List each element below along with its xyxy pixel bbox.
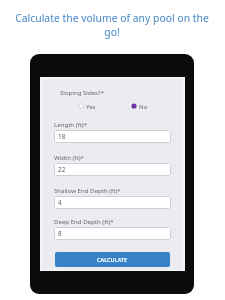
button[interactable]: 22	[54, 163, 171, 176]
staticText: Width (ft)*	[54, 153, 84, 161]
staticText: Deep End Depth (ft)*	[54, 217, 114, 225]
button[interactable]: 8	[54, 227, 171, 240]
button[interactable]: 4	[54, 196, 171, 209]
staticText: CALCULATE	[97, 256, 128, 263]
staticText: Yes	[86, 102, 96, 110]
staticText: 4	[58, 198, 62, 207]
button[interactable]: 18	[54, 130, 171, 143]
button[interactable]: No	[131, 102, 148, 110]
staticText: No	[139, 102, 148, 110]
button[interactable]: CALCULATE	[55, 252, 170, 267]
staticText: Sloping Sides?*	[60, 88, 105, 96]
staticText: 22	[58, 165, 66, 174]
button[interactable]: Yes	[78, 102, 96, 110]
staticText: 18	[58, 132, 66, 141]
staticText: Calculate the volume of any pool on the …	[12, 11, 212, 39]
staticText: Shallow End Depth (ft)*	[54, 186, 121, 194]
staticText: 8	[58, 229, 62, 238]
staticText: Length (ft)*	[54, 120, 88, 128]
